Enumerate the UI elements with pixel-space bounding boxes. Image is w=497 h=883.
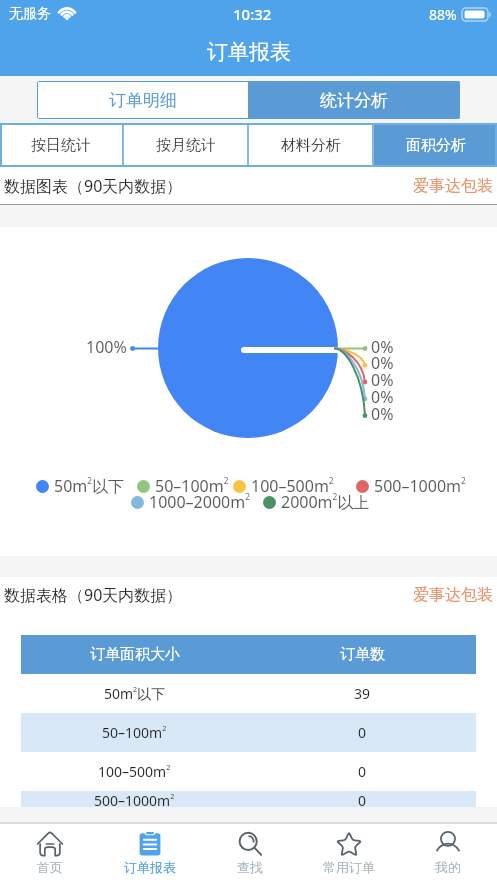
button[interactable]: Search [200,824,299,883]
staticText: 首页 [37,859,63,875]
staticText: 订单报表 [207,39,291,65]
staticText: 0 [358,791,367,807]
staticText: 我的 [435,859,461,875]
staticText: 2000m2以上 [281,491,370,513]
staticText: 爱事达包装 [413,585,493,605]
staticText: 订单报表 [124,859,176,875]
staticText: 0% [371,336,394,358]
staticText: 500–1000m2 [94,791,175,807]
staticText: 按月统计 [156,136,216,155]
staticText: 1000–2000m2 [149,491,250,513]
staticText: 数据图表（90天内数据） [4,175,183,197]
button[interactable]: Profile [398,824,497,883]
staticText: 100% [86,336,127,358]
staticText: 39 [354,684,371,703]
staticText: 100–500m2 [98,762,171,781]
button[interactable]: 订单明细 [37,81,248,119]
staticText: 面积分析 [406,136,466,155]
staticText: 0% [371,369,394,391]
staticText: 订单面积大小 [90,645,180,664]
button[interactable]: 统计分析 [248,81,460,119]
button[interactable]: 按日统计 [0,123,122,167]
staticText: 常用订单 [323,859,375,875]
staticText: 统计分析 [320,90,388,111]
staticText: 10:32 [233,4,272,24]
staticText: 材料分析 [281,136,341,155]
staticText: 50–100m2 [155,475,229,497]
button[interactable]: 面积分析 [374,123,497,167]
staticText: 0 [358,762,367,781]
staticText: 0% [371,386,394,408]
button[interactable]: 按月统计 [124,123,247,167]
staticText: 88% [429,5,457,24]
button[interactable]: Order reports [100,824,200,883]
button[interactable]: 材料分析 [249,123,372,167]
staticText: 订单明细 [109,90,177,111]
staticText: 50m2以下 [104,684,166,703]
staticText: 100–500m2 [251,475,334,497]
staticText: 0 [358,723,367,742]
staticText: 无服务 [9,5,51,23]
staticText: 订单数 [340,645,385,664]
staticText: 按日统计 [31,136,91,155]
staticText: 50–100m2 [102,723,167,742]
staticText: 500–1000m2 [374,475,466,497]
staticText: 数据表格（90天内数据） [4,584,183,606]
staticText: 查找 [237,859,263,875]
button[interactable]: Favourites [299,824,398,883]
staticText: 0% [371,403,394,425]
staticText: 爱事达包装 [413,176,493,196]
button[interactable]: Home [0,824,100,883]
staticText: 0% [371,352,394,374]
staticText: 50m2以下 [54,475,125,497]
